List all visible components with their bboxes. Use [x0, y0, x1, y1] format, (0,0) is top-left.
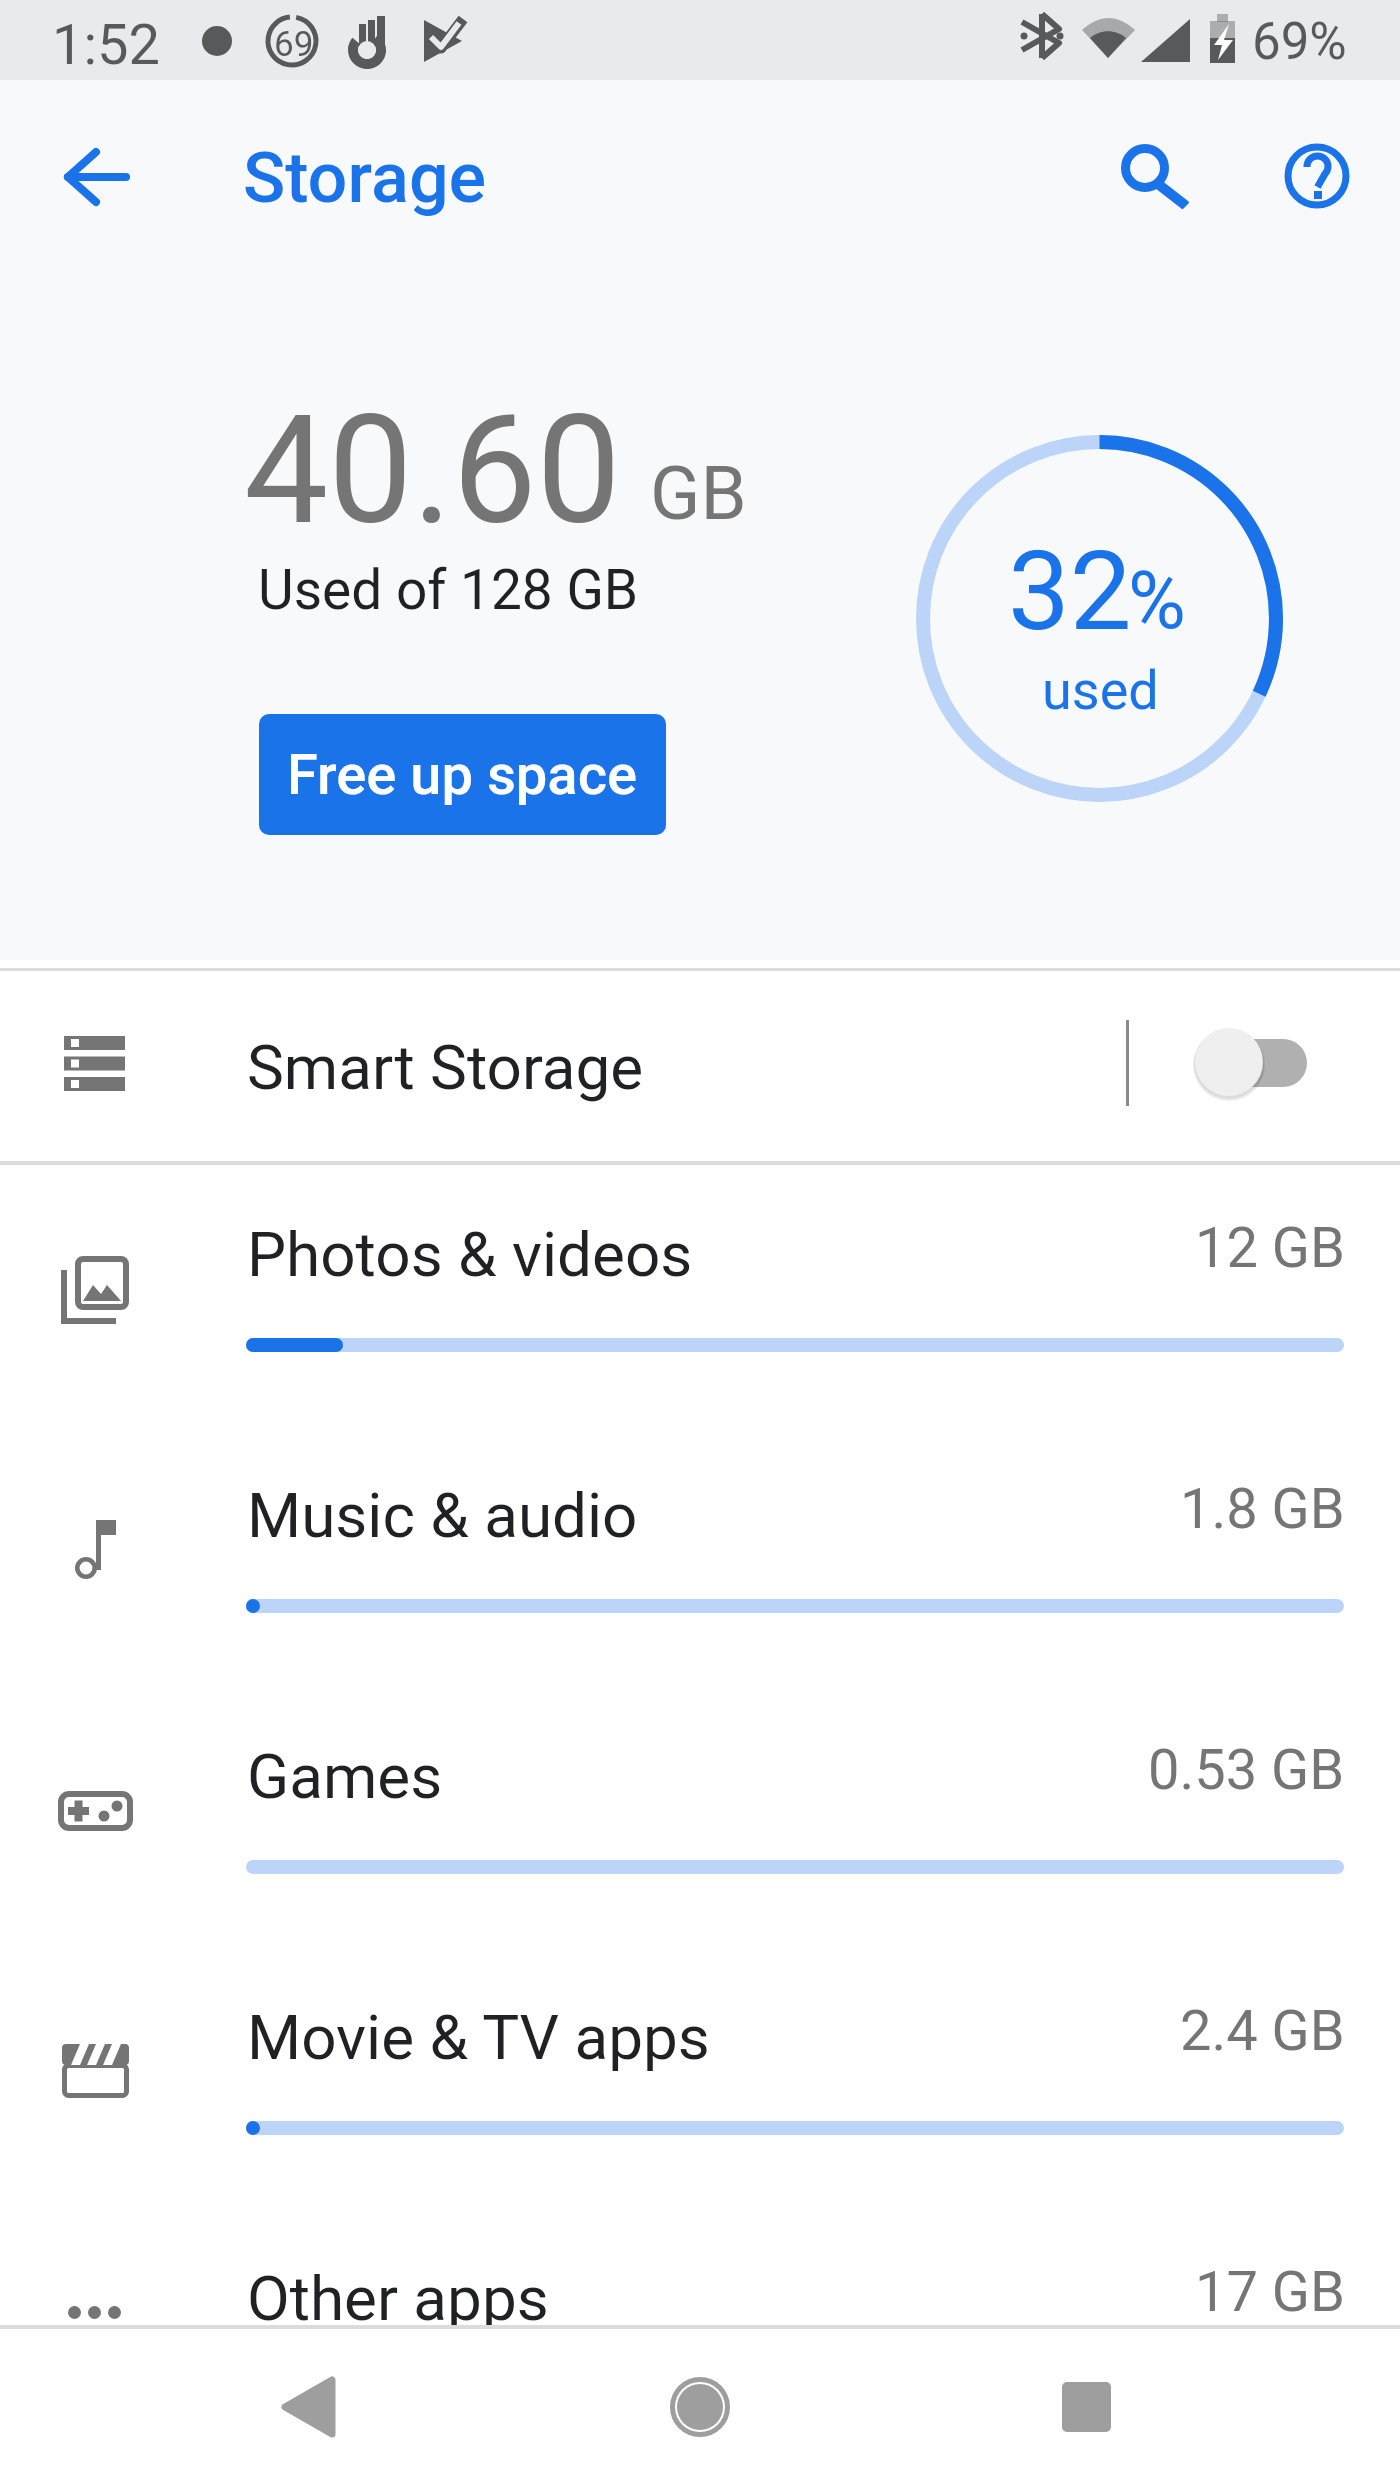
staticText: % [1128, 555, 1186, 648]
button[interactable]: Music & audio [0, 1426, 1400, 1687]
staticText: Photos & videos [247, 1218, 693, 1291]
staticText: 1.8 GB [1180, 1476, 1345, 1542]
staticText: 0.53 GB [1148, 1737, 1345, 1803]
staticText: Other apps [247, 2262, 549, 2335]
button[interactable]: Photos & videos [0, 1165, 1400, 1426]
staticText: 12 GB [1195, 1215, 1345, 1281]
staticText: 2.4 GB [1180, 1998, 1345, 2064]
staticText: Games [247, 1740, 443, 1813]
button[interactable] [1180, 1001, 1370, 1131]
staticText: GB [650, 450, 747, 537]
staticText: Movie & TV apps [247, 2001, 710, 2074]
staticText: 32 [1008, 527, 1132, 656]
staticText: 1:52 [52, 12, 160, 78]
button[interactable]: Smart Storage [0, 971, 1400, 1161]
staticText: 17 GB [1195, 2259, 1345, 2325]
staticText: Music & audio [247, 1479, 638, 1552]
button[interactable]: Home [640, 2347, 760, 2467]
staticText: Storage [243, 137, 487, 219]
button[interactable]: Other apps [0, 2209, 1400, 2470]
staticText: 40.60 [244, 383, 621, 559]
button[interactable]: Recents [1026, 2347, 1146, 2467]
staticText: 69 [274, 24, 314, 65]
button[interactable]: Free up space [259, 714, 666, 835]
button[interactable]: Movie & TV apps [0, 1948, 1400, 2209]
staticText: Used of 128 GB [258, 558, 639, 622]
button[interactable]: Games [0, 1687, 1400, 1948]
staticText: 69% [1252, 12, 1347, 72]
staticText: Free up space [287, 742, 638, 808]
button[interactable]: Search [1089, 112, 1201, 224]
button[interactable]: Back [249, 2347, 369, 2467]
staticText: Smart Storage [247, 1031, 644, 1104]
button[interactable]: Back [41, 121, 153, 233]
button[interactable]: Help [1261, 120, 1373, 232]
staticText: used [1042, 659, 1159, 722]
